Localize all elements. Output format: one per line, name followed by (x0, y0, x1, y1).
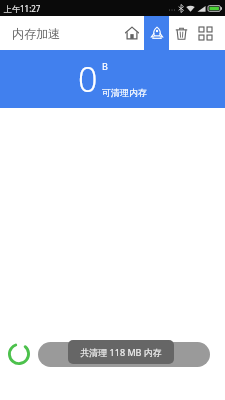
staticText: 内存加速 (12, 26, 119, 41)
button[interactable] (38, 342, 210, 367)
button[interactable]: 清理 (169, 16, 194, 50)
button[interactable]: 更多 (194, 16, 217, 50)
staticText: 可清理内存 (102, 87, 147, 98)
staticText: 0 (78, 56, 98, 102)
button[interactable]: 清理进度 (8, 343, 30, 365)
button[interactable]: 内存加速 (144, 16, 169, 50)
button[interactable]: 首页 (119, 16, 144, 50)
staticText: B (102, 60, 108, 72)
staticText: 上午11:27 (4, 3, 41, 14)
staticText: 共清理 118 MB 内存 (80, 346, 162, 358)
